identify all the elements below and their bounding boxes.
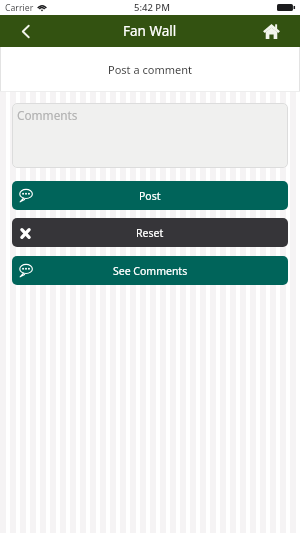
staticText: Comments: [17, 107, 78, 123]
button[interactable]: Reset: [12, 218, 288, 247]
button[interactable]: Post: [12, 181, 288, 210]
button[interactable]: Home: [243, 15, 300, 47]
staticText: Reset: [136, 226, 164, 240]
staticText: Carrier: [5, 2, 34, 14]
staticText: Post a comment: [108, 62, 192, 77]
staticText: 5:42 PM: [134, 1, 170, 14]
staticText: See Comments: [113, 264, 188, 278]
staticText: Post: [139, 189, 161, 203]
staticText: Fan Wall: [123, 22, 177, 40]
button[interactable]: Back: [0, 15, 50, 47]
button[interactable]: Comments: [12, 103, 288, 168]
button[interactable]: See Comments: [12, 256, 288, 285]
